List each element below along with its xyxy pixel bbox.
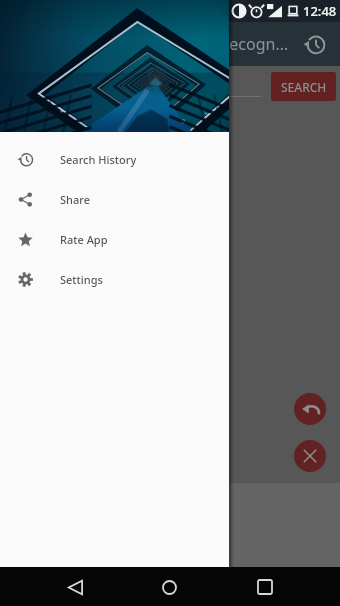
button[interactable]: Close <box>294 440 326 472</box>
button[interactable]: Back <box>59 571 91 603</box>
button[interactable]: Rate App <box>0 219 229 259</box>
button[interactable]: Search History <box>0 139 229 179</box>
button[interactable]: Share <box>0 179 229 219</box>
button[interactable]: Undo <box>294 393 326 425</box>
button[interactable]: Recents <box>249 571 281 603</box>
staticText: Image Recogn… <box>167 33 289 55</box>
button[interactable]: History <box>298 28 330 60</box>
staticText: 12:48 <box>303 2 337 20</box>
staticText: Search History <box>60 152 137 167</box>
staticText: Settings <box>60 272 103 287</box>
button[interactable]: SEARCH <box>271 72 336 101</box>
button[interactable]: Settings <box>0 259 229 299</box>
staticText: Rate App <box>60 232 108 247</box>
staticText: SEARCH <box>281 79 327 95</box>
staticText: Share <box>60 192 90 207</box>
button[interactable]: Home <box>153 571 185 603</box>
